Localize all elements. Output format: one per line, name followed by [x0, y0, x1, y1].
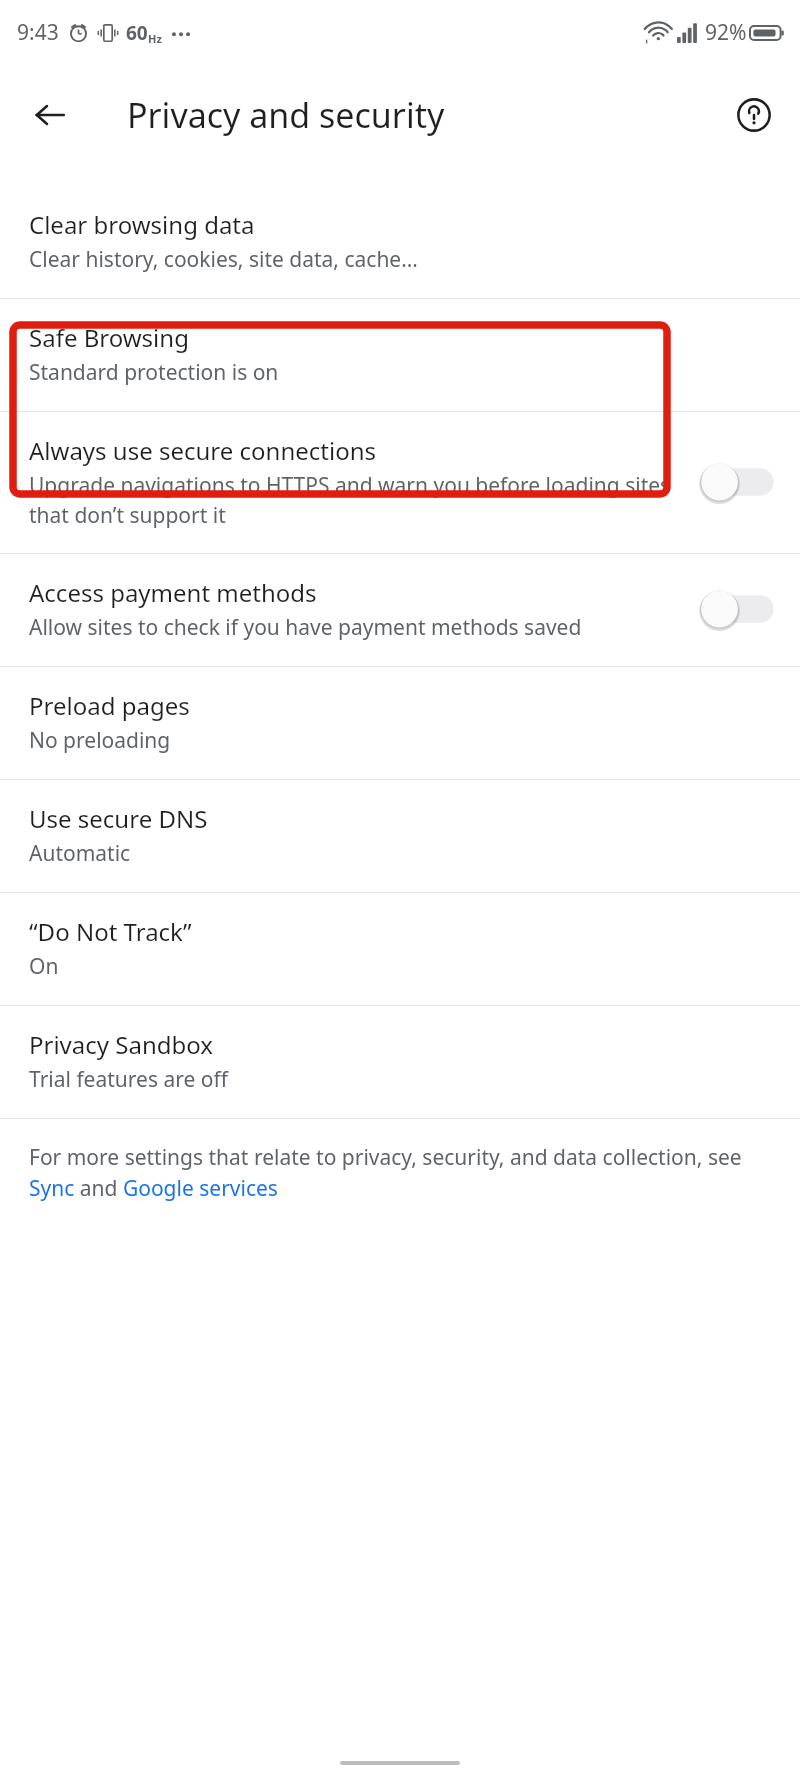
staticText: Standard protection is on [29, 358, 279, 387]
button[interactable]: Help [726, 87, 782, 143]
button[interactable]: For more settings that relate to privacy… [0, 1119, 800, 1226]
staticText: Clear history, cookies, site data, cache… [29, 245, 418, 274]
staticText: Access payment methods [29, 576, 317, 609]
button[interactable]: Clear browsing data [0, 186, 800, 298]
button[interactable]: Access payment methods [0, 554, 800, 666]
staticText: On [29, 952, 59, 981]
button[interactable]: Preload pages [0, 667, 800, 779]
staticText: Trial features are off [29, 1065, 228, 1094]
staticText: “Do Not Track” [29, 915, 192, 948]
staticText: Privacy and security [127, 92, 445, 138]
staticText: Automatic [29, 839, 131, 868]
staticText: Upgrade navigations to HTTPS and warn yo… [29, 471, 682, 529]
staticText: Hz [148, 31, 162, 46]
staticText: 60 [126, 20, 148, 46]
button[interactable]: Off [698, 586, 776, 632]
staticText: 92% [705, 18, 747, 47]
staticText: Clear browsing data [29, 208, 255, 241]
button[interactable]: Privacy Sandbox [0, 1006, 800, 1118]
staticText: Use secure DNS [29, 802, 208, 835]
staticText: Safe Browsing [29, 321, 189, 354]
staticText: Allow sites to check if you have payment… [29, 613, 582, 642]
staticText: Privacy Sandbox [29, 1028, 214, 1061]
staticText: 9:43 [17, 18, 59, 47]
staticText: Always use secure connections [29, 434, 376, 467]
button[interactable]: Back [22, 87, 78, 143]
button[interactable]: Always use secure connections [0, 412, 800, 553]
button[interactable]: Use secure DNS [0, 780, 800, 892]
staticText: Preload pages [29, 689, 190, 722]
button[interactable]: Safe Browsing [0, 299, 800, 411]
button[interactable]: “Do Not Track” [0, 893, 800, 1005]
staticText: No preloading [29, 726, 171, 755]
button[interactable]: Off [698, 459, 776, 505]
staticText: For more settings that relate to privacy… [29, 1143, 760, 1202]
